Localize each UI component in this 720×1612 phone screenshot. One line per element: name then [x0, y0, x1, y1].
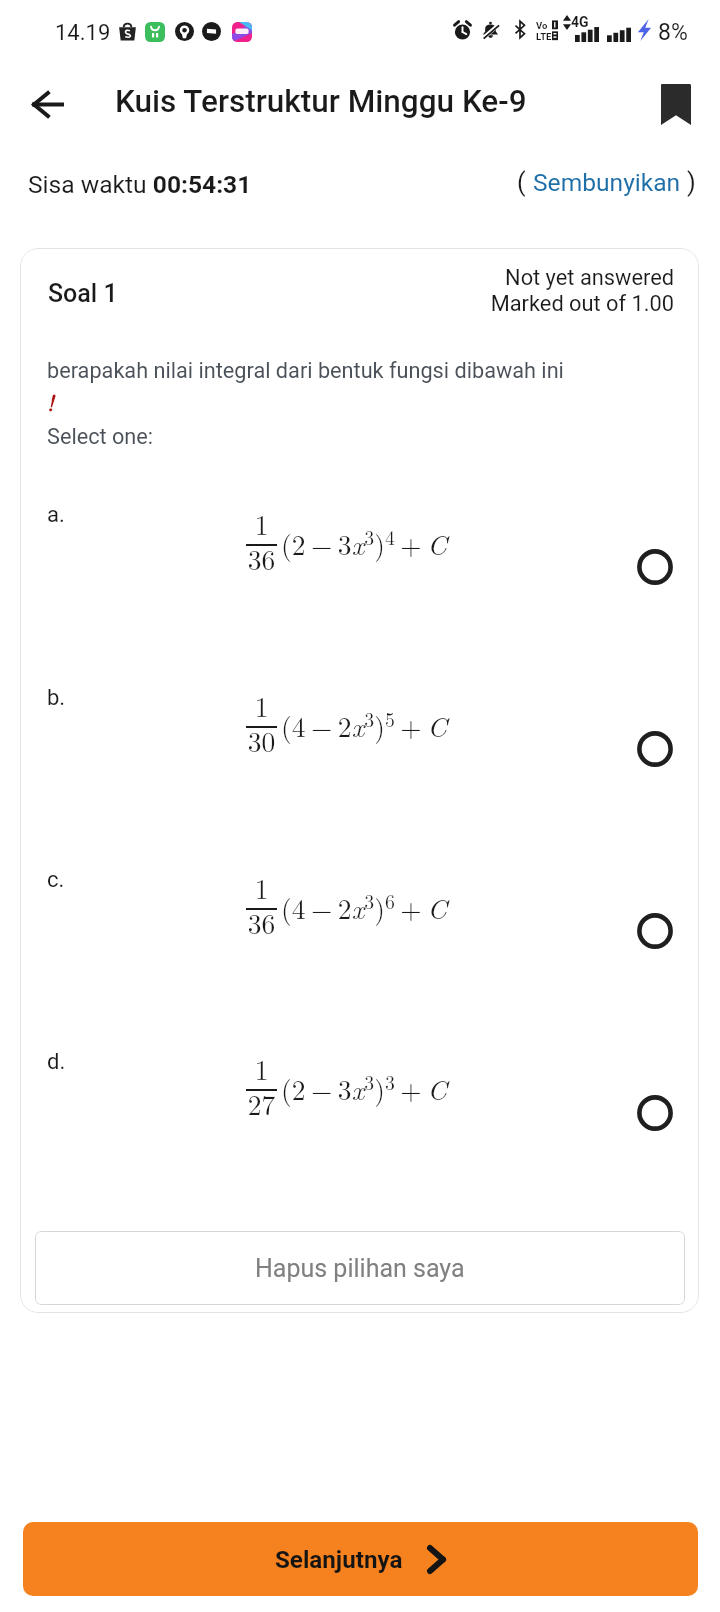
- staticText: Selanjutnya: [275, 1546, 403, 1574]
- button[interactable]: b.: [20, 669, 699, 851]
- button[interactable]: Hapus pilihan saya: [35, 1231, 685, 1305]
- staticText: berapakah nilai integral dari bentuk fun…: [47, 358, 564, 383]
- staticText: Kuis Terstruktur Minggu Ke-9: [115, 83, 527, 120]
- staticText: 27: [246, 1084, 277, 1123]
- staticText: 30: [246, 721, 277, 760]
- staticText: Soal 1: [48, 279, 118, 308]
- staticText: (: [517, 168, 526, 197]
- staticText: LTE: [536, 31, 552, 42]
- staticText: Hapus pilihan saya: [255, 1254, 465, 1283]
- button[interactable]: Back: [21, 78, 73, 130]
- staticText: ): [687, 168, 696, 197]
- staticText: c.: [47, 867, 65, 893]
- button[interactable]: c.: [20, 856, 699, 1038]
- staticText: Marked out of 1.00: [490, 291, 674, 317]
- staticText: 1: [246, 686, 277, 725]
- staticText: 1: [246, 868, 277, 907]
- staticText: Sisa waktu 00:54:31: [28, 170, 252, 199]
- staticText: Not yet answered: [505, 265, 674, 291]
- staticText: (2 − 3x3)4 + C: [281, 523, 447, 563]
- staticText: (4 − 2x3)5 + C: [281, 705, 447, 745]
- staticText: Select one:: [47, 424, 154, 449]
- staticText: (4 − 2x3)6 + C: [281, 887, 447, 927]
- staticText: b.: [47, 685, 66, 711]
- staticText: 36: [246, 539, 277, 578]
- staticText: d.: [47, 1049, 66, 1075]
- staticText: 1: [246, 504, 277, 543]
- button[interactable]: d.: [20, 1045, 699, 1225]
- staticText: 8%: [658, 19, 688, 46]
- staticText: 4G: [571, 14, 589, 30]
- staticText: !: [47, 386, 54, 417]
- button[interactable]: Bookmark: [651, 79, 701, 129]
- staticText: 14.19: [55, 20, 111, 46]
- staticText: 36: [246, 903, 277, 942]
- button[interactable]: Selanjutnya: [23, 1522, 698, 1596]
- staticText: (2 − 3x3)3 + C: [281, 1068, 447, 1108]
- button[interactable]: a.: [20, 487, 699, 669]
- staticText: 1: [246, 1049, 277, 1088]
- button[interactable]: (: [517, 168, 696, 197]
- staticText: Vo: [536, 20, 548, 31]
- staticText: Sembunyikan: [533, 168, 681, 197]
- staticText: a.: [47, 502, 65, 528]
